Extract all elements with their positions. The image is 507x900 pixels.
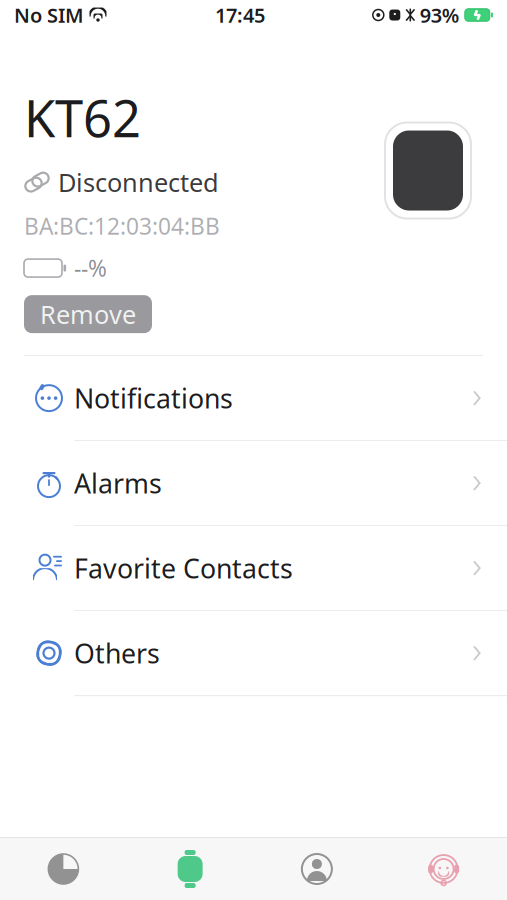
staticText: 93%: [420, 2, 460, 28]
button[interactable]: Alarms: [0, 441, 507, 526]
staticText: No SIM: [14, 2, 84, 28]
staticText: Others: [74, 635, 160, 671]
button[interactable]: Favorite Contacts: [0, 526, 507, 611]
staticText: Remove: [40, 297, 136, 331]
staticText: --%: [74, 253, 107, 283]
button[interactable]: Statistics: [0, 838, 127, 900]
staticText: 17:45: [215, 2, 265, 28]
staticText: KT62: [24, 84, 141, 151]
button[interactable]: Notifications: [0, 356, 507, 441]
button[interactable]: Support: [380, 838, 507, 900]
staticText: Notifications: [74, 380, 233, 416]
button[interactable]: Device: [127, 838, 254, 900]
staticText: BA:BC:12:03:04:BB: [24, 211, 220, 241]
button[interactable]: Profile: [253, 838, 380, 900]
staticText: Disconnected: [58, 165, 219, 199]
button[interactable]: Others: [0, 611, 507, 696]
button[interactable]: Remove: [24, 295, 152, 333]
staticText: Alarms: [74, 465, 162, 501]
staticText: Favorite Contacts: [74, 550, 293, 586]
